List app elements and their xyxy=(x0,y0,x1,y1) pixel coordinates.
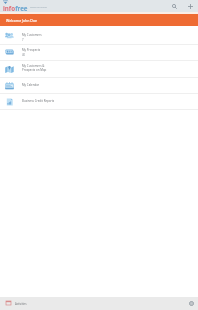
staticText: My Customers xyxy=(22,33,42,37)
button[interactable]: Business Credit Reports xyxy=(0,94,198,110)
button[interactable]: My Customers xyxy=(0,26,198,45)
button[interactable]: Welcome John Doe xyxy=(0,14,198,26)
staticText: follow the money xyxy=(30,6,47,9)
button[interactable]: Search xyxy=(169,0,180,12)
button[interactable]: My Prospects xyxy=(0,45,198,61)
staticText: My Prospects xyxy=(22,48,41,52)
button[interactable]: Activities xyxy=(2,297,36,310)
button[interactable]: Settings xyxy=(186,297,196,310)
button[interactable]: My Customers & Prospects on Map xyxy=(0,61,198,78)
staticText: Business Credit Reports xyxy=(22,99,55,103)
button[interactable]: My Calendar xyxy=(0,78,198,94)
staticText: My Calendar xyxy=(22,83,40,87)
staticText: Activities xyxy=(15,302,27,306)
staticText: 40 xyxy=(22,53,26,57)
button[interactable]: Add xyxy=(185,0,196,12)
staticText: My Customers & Prospects on Map xyxy=(22,64,47,72)
staticText: Welcome John Doe xyxy=(6,18,37,23)
staticText: infofree xyxy=(3,4,28,12)
staticText: 7 xyxy=(22,38,24,42)
